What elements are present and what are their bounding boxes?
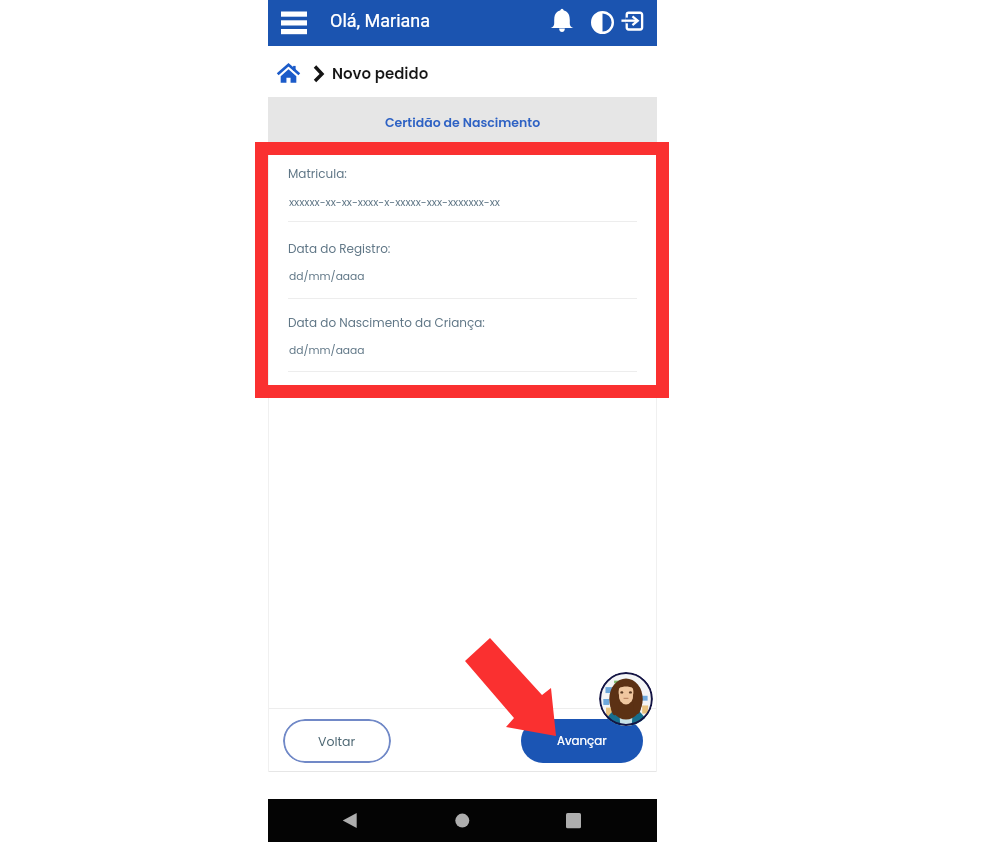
staticText: Avançar bbox=[557, 733, 607, 750]
staticText: dd/mm/aaaa bbox=[289, 343, 365, 358]
staticText: Certidão de Nascimento bbox=[385, 114, 541, 131]
staticText: Novo pedido bbox=[332, 63, 429, 84]
button[interactable]: Voltar bbox=[283, 719, 391, 763]
button[interactable]: Home bbox=[277, 62, 300, 85]
staticText: Data do Nascimento da Criança: bbox=[288, 314, 485, 331]
button[interactable]: Notifications bbox=[549, 9, 575, 35]
staticText: xxxxxx-xx-xx-xxxx-x-xxxxx-xxx-xxxxxxx-xx bbox=[289, 195, 500, 210]
button[interactable]: Profile bbox=[599, 672, 653, 726]
staticText: Matricula: bbox=[288, 165, 347, 182]
staticText: dd/mm/aaaa bbox=[289, 269, 365, 284]
staticText: Olá, Mariana bbox=[330, 10, 431, 31]
button[interactable]: Contrast bbox=[591, 11, 614, 34]
button[interactable]: Avançar bbox=[521, 719, 643, 763]
staticText: Data do Registro: bbox=[288, 240, 391, 257]
button[interactable]: Menu bbox=[278, 7, 310, 39]
button[interactable]: Home bbox=[444, 802, 480, 838]
button[interactable]: Logout bbox=[621, 11, 643, 33]
staticText: Voltar bbox=[318, 733, 356, 750]
button[interactable]: Back bbox=[330, 802, 366, 838]
button[interactable]: Recent apps bbox=[555, 802, 591, 838]
